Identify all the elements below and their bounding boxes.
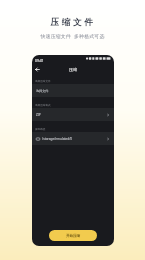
button[interactable]: Back <box>33 65 42 74</box>
button[interactable]: ZIP <box>32 108 114 121</box>
button[interactable]: 选择文件 <box>32 84 114 97</box>
staticText: 快速压缩文件 多种格式可选 <box>40 33 105 40</box>
staticText: 开始压缩 <box>66 234 80 238</box>
staticText: 压缩文件 <box>50 17 96 28</box>
staticText: 选择压缩文件 <box>35 79 51 82</box>
staticText: 选择文件 <box>36 89 49 93</box>
staticText: 09:41 <box>35 58 44 62</box>
staticText: 选择压缩格式 <box>35 103 51 106</box>
button[interactable]: /storage/emulated/0 <box>32 132 114 145</box>
staticText: 压缩 <box>69 67 78 72</box>
staticText: 保存路径 <box>35 127 46 130</box>
button[interactable]: 开始压缩 <box>49 230 97 241</box>
staticText: ZIP <box>36 113 41 117</box>
staticText: /storage/emulated/0 <box>42 137 73 141</box>
